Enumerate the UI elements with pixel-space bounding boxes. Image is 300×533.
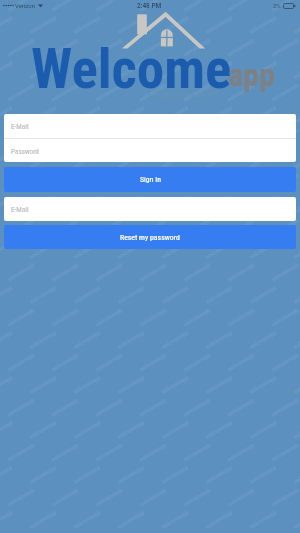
staticText: 2:48 PM [137,2,162,10]
staticText: Sign In [140,175,161,184]
button[interactable]: Reset my password [4,225,296,249]
button[interactable]: Sign In [4,167,296,192]
staticText: Verizon [15,2,36,9]
staticText: 2% [273,2,281,9]
staticText: E-Mail [11,122,29,130]
staticText: Welcome [31,37,232,101]
staticText: Reset my password [120,233,180,242]
button[interactable]: Password [4,139,296,162]
staticText: app [228,56,275,94]
button[interactable]: E-Mail [4,197,296,221]
staticText: E-Mail [11,205,29,213]
button[interactable]: E-Mail [4,114,296,138]
staticText: by guestsstream [151,89,218,100]
staticText: Password [11,147,39,155]
